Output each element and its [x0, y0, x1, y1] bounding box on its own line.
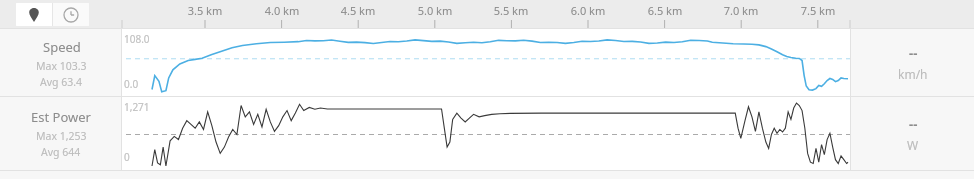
staticText: W	[907, 137, 919, 153]
button[interactable]: Est Power	[0, 97, 122, 170]
staticText: Avg 63.4	[40, 75, 83, 89]
button[interactable]: Speed	[0, 29, 122, 97]
staticText: --	[909, 44, 918, 62]
button[interactable]: --	[851, 29, 974, 97]
staticText: --	[909, 115, 918, 133]
staticText: Est Power	[31, 108, 91, 126]
staticText: 1,271	[124, 100, 150, 114]
staticText: Max 103.3	[36, 59, 87, 73]
staticText: 6.5 km	[639, 3, 691, 18]
staticText: 5.5 km	[485, 3, 537, 18]
staticText: 108.0	[124, 32, 150, 46]
staticText: Avg 644	[41, 145, 81, 159]
staticText: 6.0 km	[562, 3, 614, 18]
staticText: Speed	[43, 38, 81, 56]
button[interactable]: 1,271	[122, 97, 850, 170]
staticText: 5.0 km	[409, 3, 461, 18]
staticText: 0.0	[124, 77, 139, 91]
staticText: 4.5 km	[332, 3, 384, 18]
staticText: 3.5 km	[179, 3, 231, 18]
button[interactable]: Map view	[16, 3, 52, 26]
staticText: 0	[124, 150, 130, 164]
button[interactable]: --	[851, 97, 974, 170]
staticText: 4.0 km	[256, 3, 308, 18]
button[interactable]: Time view	[53, 3, 89, 26]
staticText: km/h	[898, 66, 928, 82]
staticText: 7.5 km	[792, 3, 844, 18]
staticText: 7.0 km	[715, 3, 767, 18]
button[interactable]: 108.0	[122, 29, 850, 97]
staticText: Max 1,253	[36, 129, 87, 143]
